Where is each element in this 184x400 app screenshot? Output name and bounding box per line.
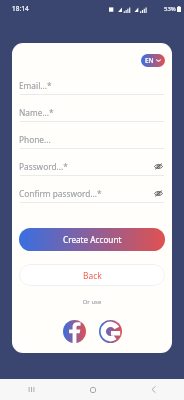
button[interactable]: Phone... [12, 122, 172, 149]
staticText: Create Account [63, 234, 122, 245]
button[interactable]: Email...* [12, 68, 172, 95]
button[interactable]: Name...* [12, 95, 172, 122]
button[interactable]: Confirm password...* [12, 176, 172, 203]
button[interactable]: Sign in with Facebook [63, 320, 86, 343]
button[interactable]: Back [123, 379, 184, 400]
button[interactable]: EN [141, 54, 165, 67]
staticText: Back [83, 270, 102, 281]
staticText: 53% [164, 5, 176, 13]
button[interactable]: Home [62, 379, 123, 400]
button[interactable]: Sign in with Google [99, 320, 122, 343]
staticText: Or use [12, 298, 172, 306]
button[interactable]: Back [19, 264, 165, 286]
staticText: Confirm password...* [19, 188, 102, 199]
button[interactable]: Create Account [19, 228, 165, 251]
button[interactable]: Password...* [12, 149, 172, 176]
staticText: Password...* [19, 161, 68, 172]
staticText: Email...* [19, 80, 52, 91]
staticText: Phone... [19, 134, 51, 145]
staticText: EN [145, 56, 154, 65]
button[interactable]: Recents [0, 379, 62, 400]
staticText: 18:14 [12, 4, 29, 13]
staticText: Name...* [19, 107, 54, 118]
